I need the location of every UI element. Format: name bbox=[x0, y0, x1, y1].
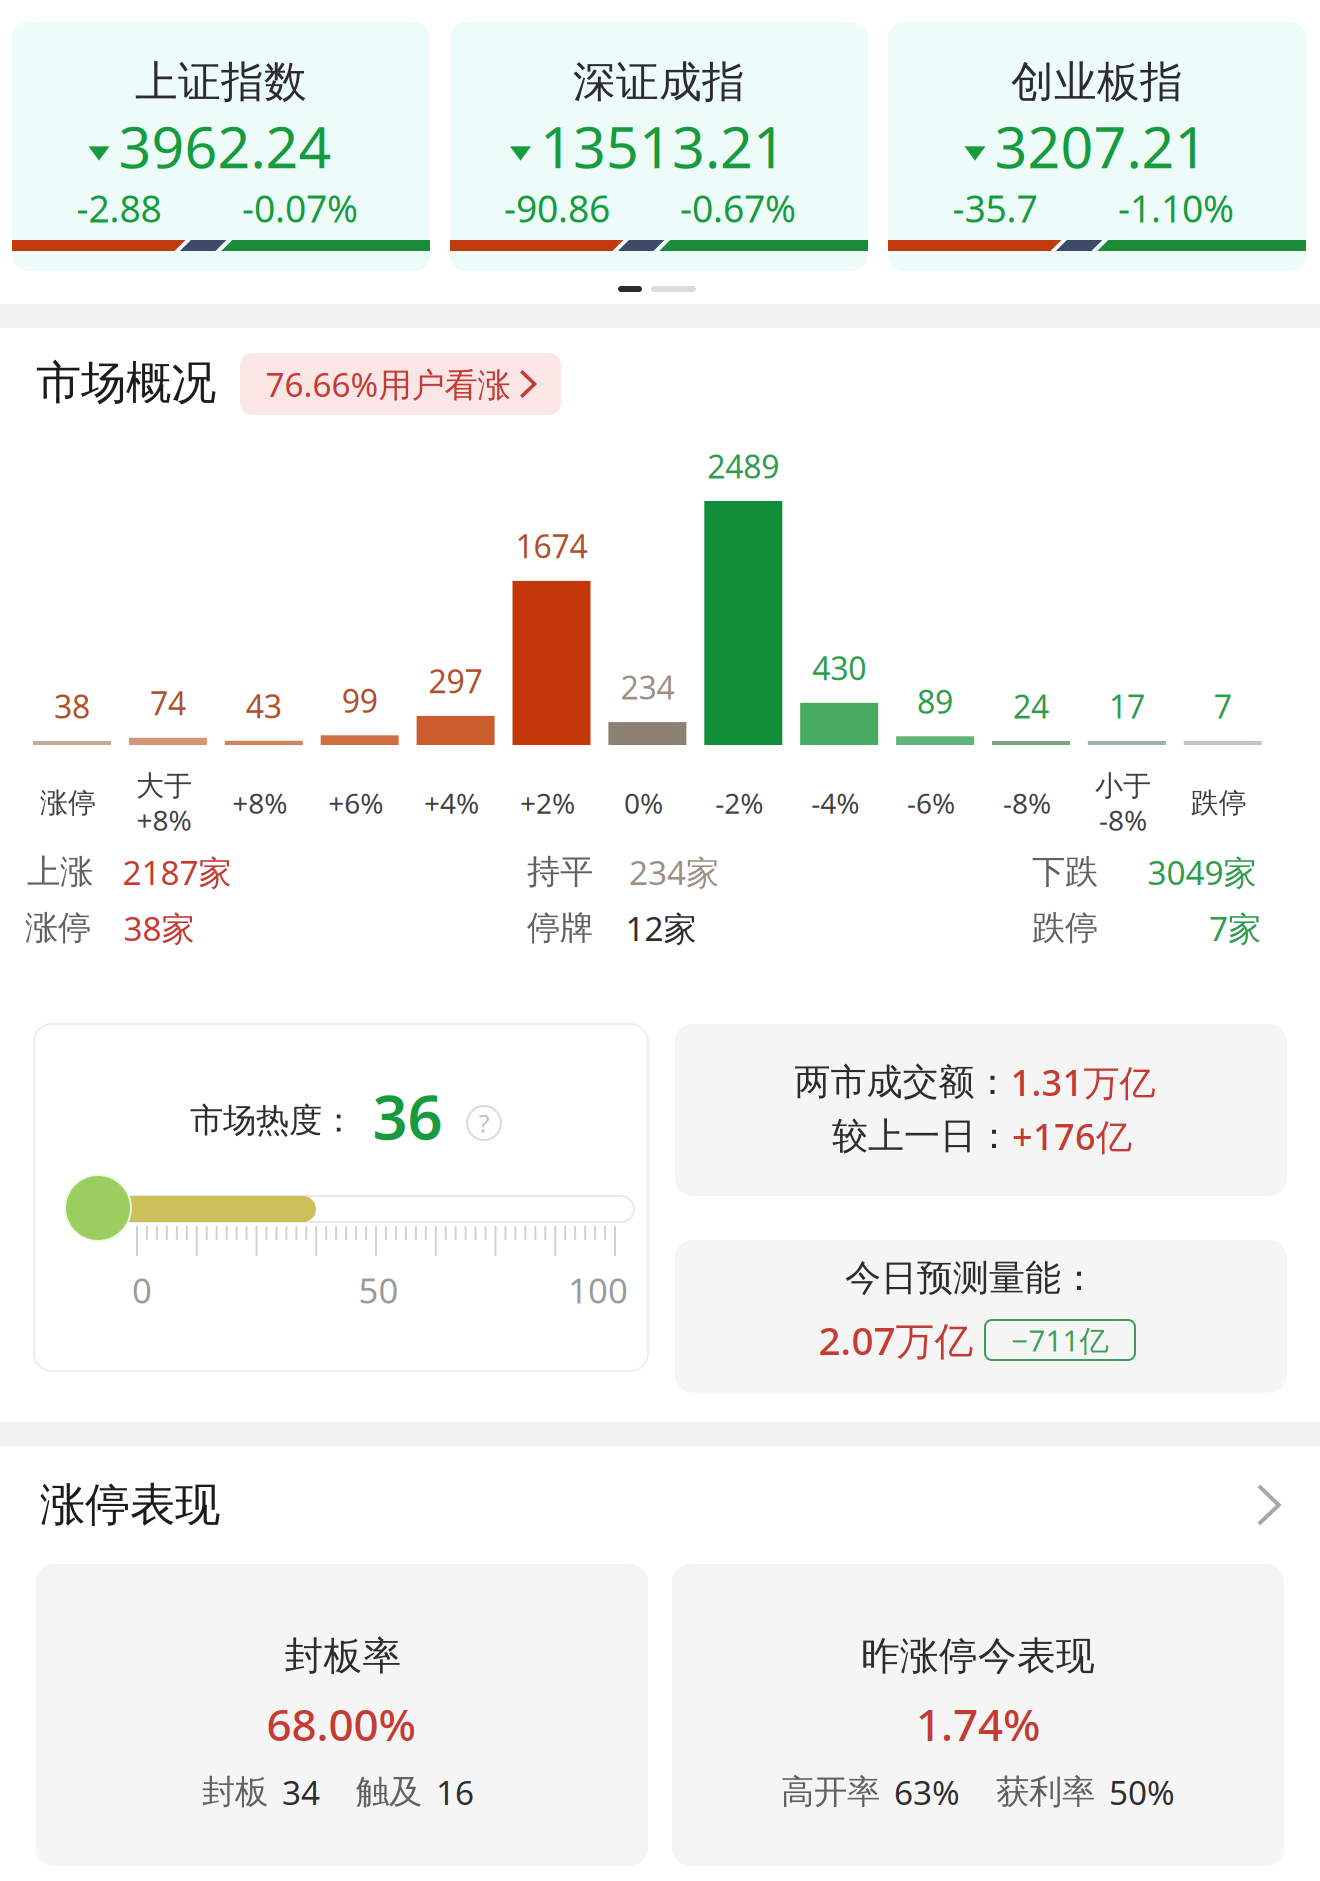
staticText: +2% bbox=[520, 784, 575, 822]
staticText: 两市成交额： bbox=[794, 1060, 1010, 1104]
staticText: 99 bbox=[342, 679, 378, 721]
staticText: 1674 bbox=[515, 525, 587, 567]
staticText: 3207.21 bbox=[994, 108, 1207, 184]
staticText: -8% bbox=[1099, 801, 1147, 839]
staticText: 获利率 bbox=[996, 1771, 1095, 1812]
staticText: -2% bbox=[715, 784, 763, 822]
staticText: 74 bbox=[150, 681, 186, 724]
staticText: 13513.21 bbox=[540, 108, 786, 184]
staticText: 297 bbox=[429, 660, 483, 702]
staticText: 17 bbox=[1109, 685, 1145, 727]
button[interactable]: 上证指数 bbox=[12, 22, 430, 271]
staticText: 16 bbox=[436, 1770, 474, 1814]
staticText: 0% bbox=[624, 784, 663, 822]
staticText: ? bbox=[478, 1106, 489, 1140]
staticText: +8% bbox=[232, 784, 287, 822]
staticText: +176亿 bbox=[1012, 1112, 1132, 1160]
staticText: 7家 bbox=[1209, 906, 1261, 950]
staticText: 大于 bbox=[136, 769, 192, 803]
button[interactable]: 深证成指 bbox=[450, 22, 868, 271]
staticText: −711亿 bbox=[1011, 1320, 1108, 1359]
staticText: 停牌 bbox=[527, 907, 593, 948]
staticText: 上涨 bbox=[27, 851, 93, 892]
staticText: 1.74% bbox=[916, 1695, 1040, 1753]
staticText: 89 bbox=[917, 680, 953, 722]
staticText: -0.67% bbox=[680, 183, 796, 233]
staticText: 3962.24 bbox=[118, 108, 331, 184]
staticText: 430 bbox=[812, 647, 866, 689]
staticText: -6% bbox=[907, 784, 955, 822]
staticText: 封板率 bbox=[284, 1632, 401, 1680]
staticText: 上证指数 bbox=[135, 56, 307, 108]
staticText: 24 bbox=[1013, 685, 1049, 727]
staticText: 2.07万亿 bbox=[818, 1314, 973, 1366]
staticText: 封板 bbox=[202, 1771, 268, 1812]
staticText: 43 bbox=[246, 684, 282, 727]
staticText: 3049家 bbox=[1147, 850, 1256, 894]
staticText: 234 bbox=[620, 666, 674, 708]
staticText: 今日预测量能： bbox=[845, 1256, 1097, 1300]
staticText: 1.31万亿 bbox=[1010, 1058, 1155, 1106]
staticText: +6% bbox=[328, 784, 383, 822]
staticText: -2.88 bbox=[76, 183, 161, 233]
staticText: 12家 bbox=[625, 906, 696, 950]
staticText: +4% bbox=[424, 784, 479, 822]
staticText: 市场热度： bbox=[190, 1100, 355, 1141]
staticText: 76.66%用户看涨 bbox=[265, 362, 510, 406]
staticText: 34 bbox=[282, 1770, 320, 1814]
staticText: -8% bbox=[1003, 784, 1051, 822]
staticText: -35.7 bbox=[952, 183, 1037, 233]
staticText: -1.10% bbox=[1118, 183, 1234, 233]
staticText: -90.86 bbox=[504, 183, 610, 233]
staticText: 昨涨停今表现 bbox=[861, 1632, 1095, 1680]
staticText: 2187家 bbox=[122, 850, 231, 894]
staticText: 100 bbox=[568, 1267, 628, 1313]
staticText: 38 bbox=[54, 685, 90, 727]
staticText: 50 bbox=[358, 1267, 398, 1313]
staticText: 68.00% bbox=[266, 1695, 415, 1753]
staticText: -0.07% bbox=[242, 183, 358, 233]
staticText: 2489 bbox=[707, 445, 779, 487]
staticText: 涨停 bbox=[25, 907, 91, 948]
staticText: 涨停表现 bbox=[40, 1477, 220, 1533]
staticText: 高开率 bbox=[781, 1771, 880, 1812]
staticText: +8% bbox=[136, 801, 191, 839]
staticText: 234家 bbox=[629, 850, 719, 894]
staticText: 36 bbox=[372, 1075, 442, 1157]
staticText: 市场概况 bbox=[36, 355, 216, 411]
staticText: 38家 bbox=[123, 906, 194, 950]
staticText: 触及 bbox=[356, 1771, 422, 1812]
staticText: 较上一日： bbox=[832, 1114, 1012, 1158]
button[interactable]: 76.66%用户看涨 bbox=[240, 353, 561, 415]
staticText: 50% bbox=[1109, 1770, 1175, 1814]
staticText: 小于 bbox=[1095, 769, 1151, 803]
staticText: 7 bbox=[1214, 685, 1232, 727]
staticText: 63% bbox=[894, 1770, 960, 1814]
staticText: 涨停 bbox=[40, 786, 96, 820]
staticText: 创业板指 bbox=[1011, 56, 1183, 108]
staticText: -4% bbox=[811, 784, 859, 822]
staticText: 跌停 bbox=[1191, 786, 1247, 820]
button[interactable]: 创业板指 bbox=[888, 22, 1306, 271]
staticText: 下跌 bbox=[1032, 851, 1098, 892]
staticText: 跌停 bbox=[1032, 907, 1098, 948]
button[interactable]: 涨停表现 bbox=[0, 1452, 1320, 1558]
staticText: 持平 bbox=[527, 851, 593, 892]
staticText: 深证成指 bbox=[573, 56, 745, 108]
staticText: 0 bbox=[132, 1267, 152, 1313]
